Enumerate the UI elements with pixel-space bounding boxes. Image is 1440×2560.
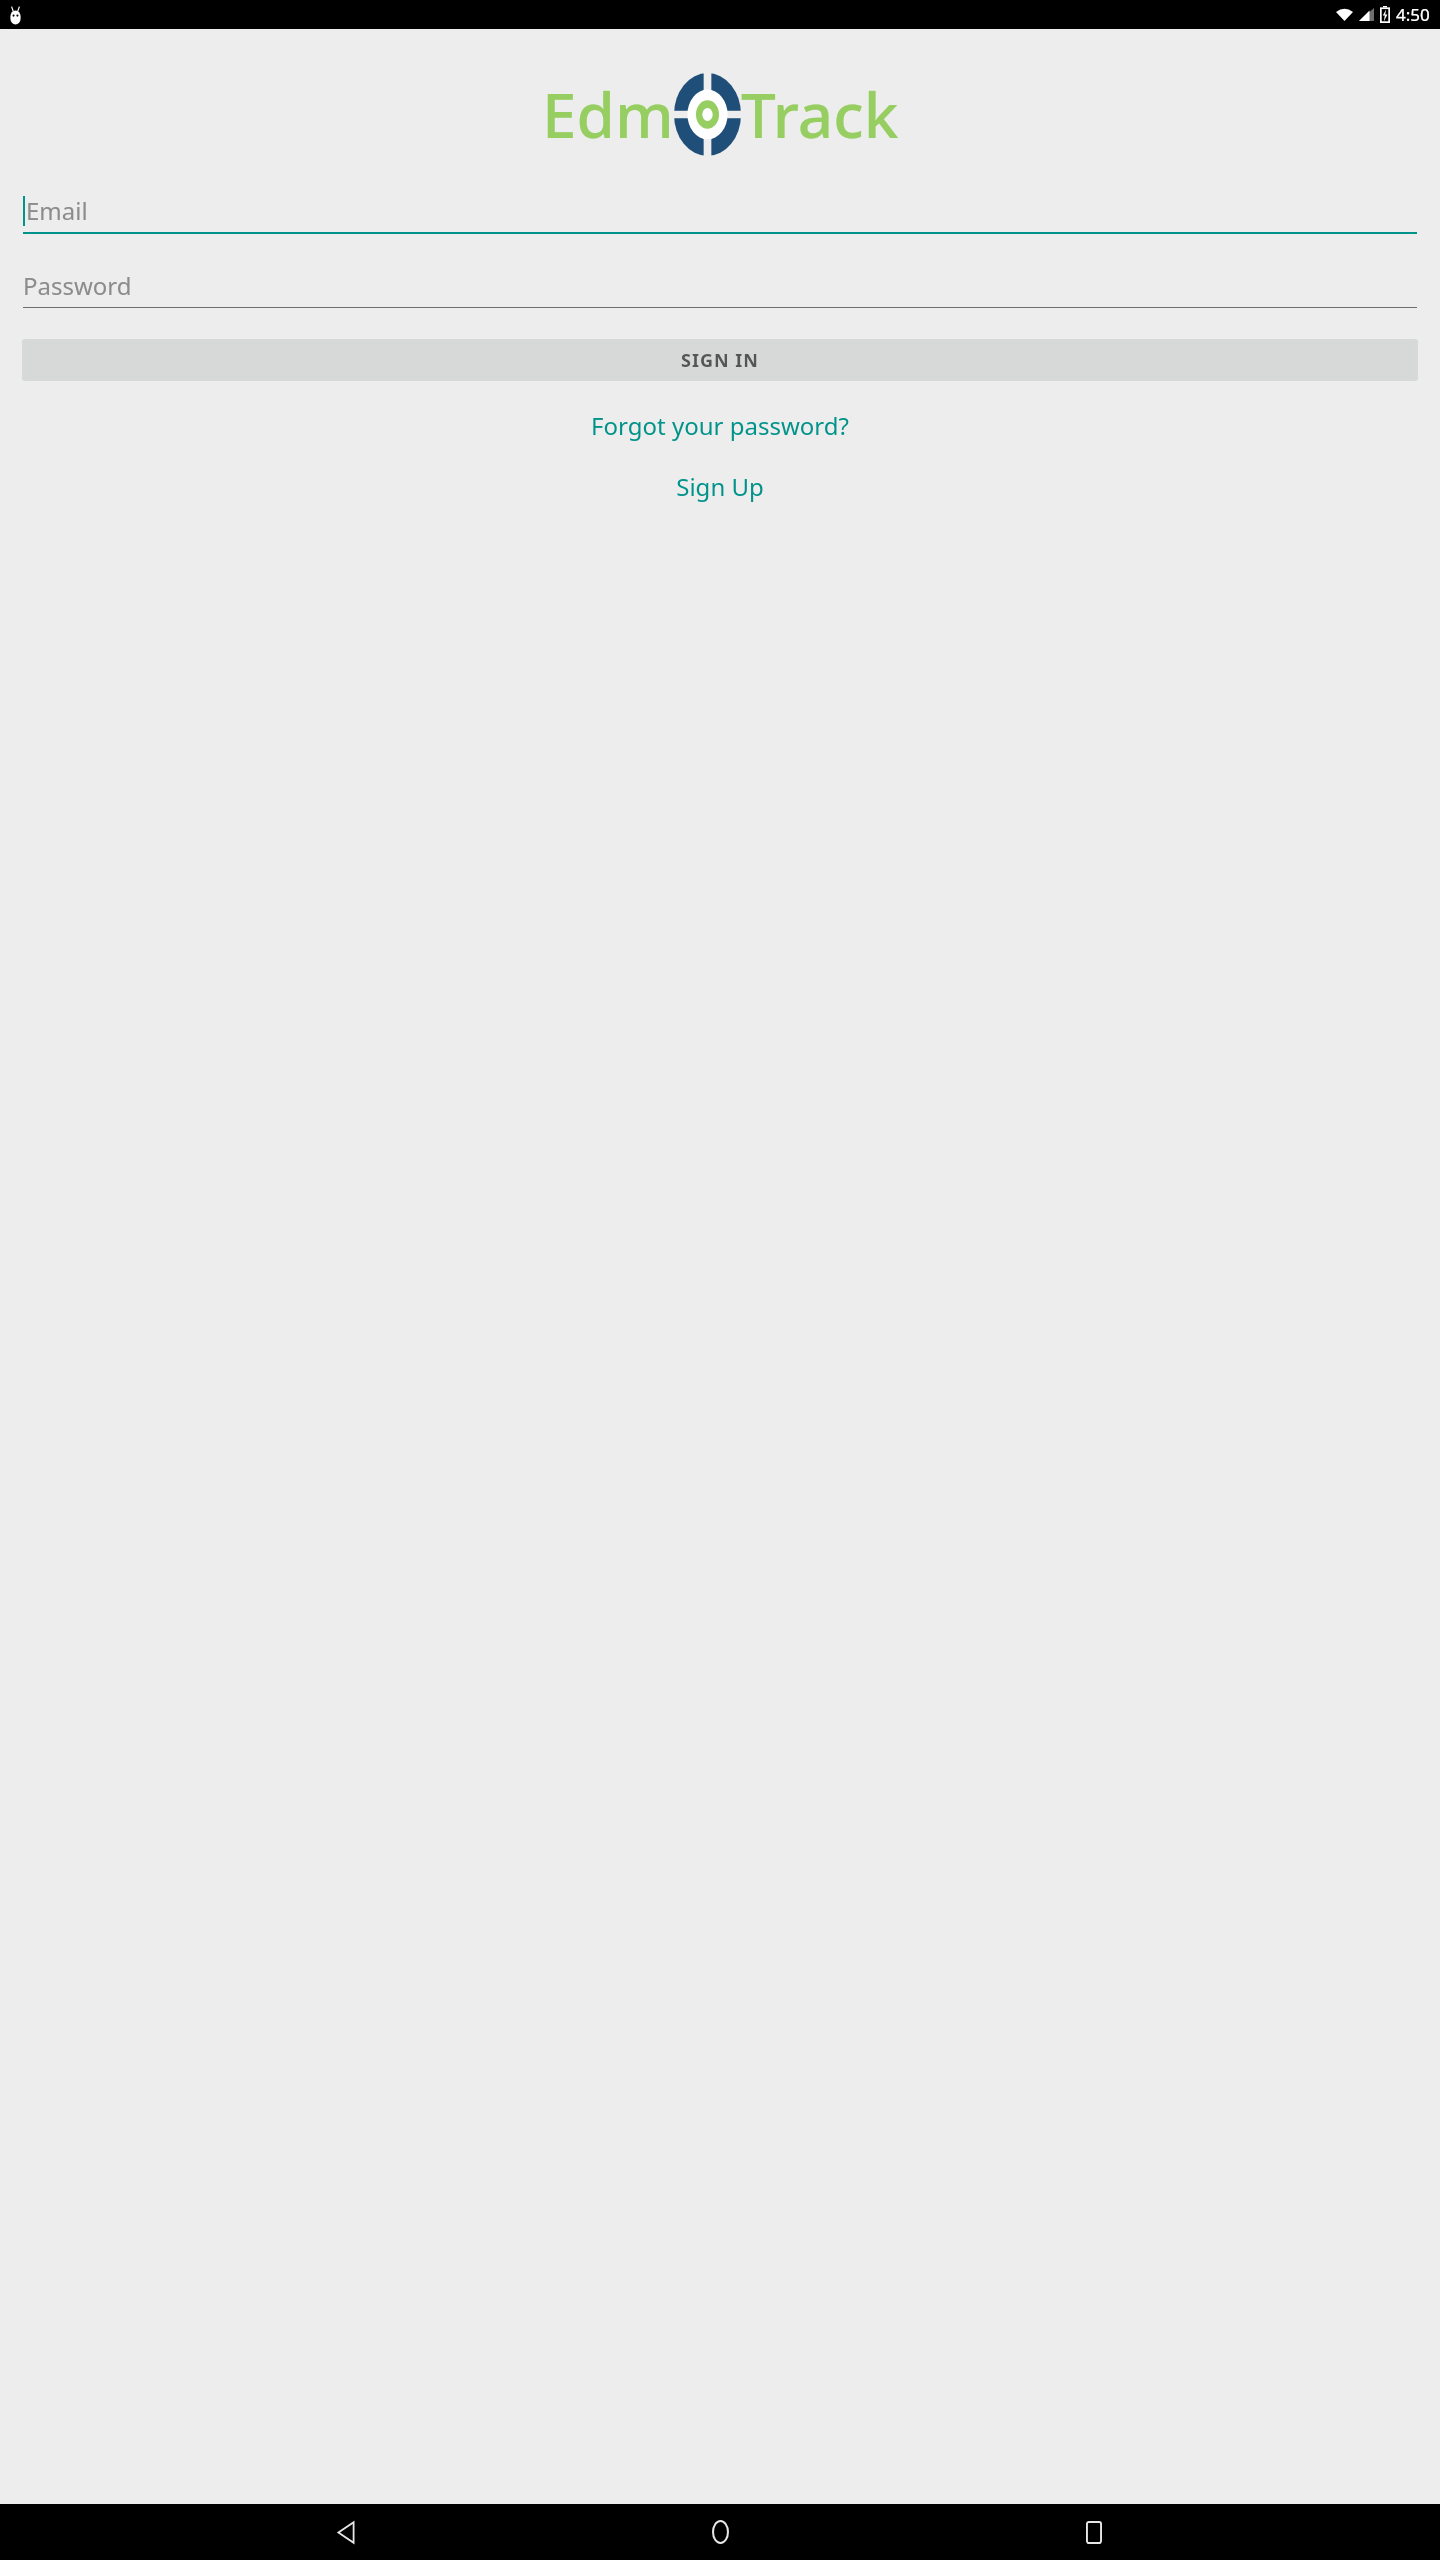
button[interactable]: Home [692, 2504, 748, 2560]
staticText: Forgot your password? [591, 409, 849, 442]
staticText: Edm [542, 72, 674, 156]
button[interactable]: Email [23, 189, 1417, 234]
button[interactable]: Sign Up [0, 464, 1440, 509]
button[interactable]: Back [318, 2504, 374, 2560]
staticText: SIGN IN [681, 348, 759, 373]
staticText: Password [23, 269, 132, 302]
button[interactable]: SIGN IN [22, 339, 1418, 381]
staticText: Email [26, 194, 88, 227]
staticText: Track [741, 72, 899, 156]
button[interactable]: Recent apps [1066, 2504, 1122, 2560]
staticText: Sign Up [676, 470, 764, 503]
staticText: 4:50 [1396, 3, 1430, 26]
button[interactable]: Forgot your password? [0, 403, 1440, 448]
button[interactable]: Password [23, 264, 1417, 308]
